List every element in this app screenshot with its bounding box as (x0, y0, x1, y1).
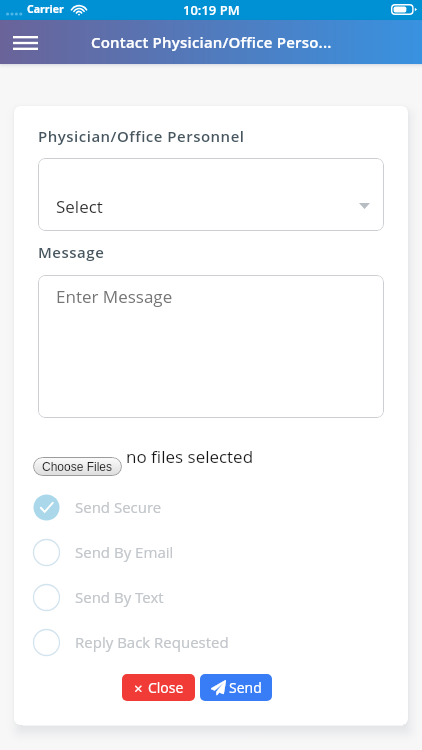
button[interactable]:  (200, 674, 272, 701)
button[interactable]: Send Secure (33, 492, 373, 522)
staticText: Select (56, 195, 103, 218)
staticText: Carrier (27, 2, 64, 16)
staticText: Send (229, 678, 262, 697)
button[interactable]: Send By Text (33, 582, 373, 612)
staticText: Physician/Office Personnel (38, 126, 245, 146)
staticText: Message (38, 242, 105, 262)
staticText: Send By Text (75, 587, 164, 607)
button[interactable]: × (122, 674, 195, 701)
button[interactable]: Reply Back Requested (33, 627, 373, 657)
staticText: Choose Files (42, 460, 113, 473)
staticText: Contact Physician/Office Perso... (91, 32, 332, 52)
button[interactable]: Select (38, 158, 384, 231)
staticText: Close (148, 678, 184, 697)
staticText: Enter Message (56, 285, 173, 308)
staticText: 10:19 PM (183, 1, 240, 19)
staticText: Reply Back Requested (75, 632, 229, 652)
staticText:  (211, 680, 227, 695)
button[interactable]: Choose Files (33, 457, 122, 476)
staticText: Send Secure (75, 497, 162, 517)
button[interactable]: Send By Email (33, 537, 373, 567)
button[interactable]: Enter Message (38, 275, 384, 418)
staticText: no files selected (126, 445, 254, 468)
staticText: Send By Email (75, 542, 174, 562)
button[interactable]: Menu (0, 24, 50, 60)
staticText: × (134, 678, 143, 698)
